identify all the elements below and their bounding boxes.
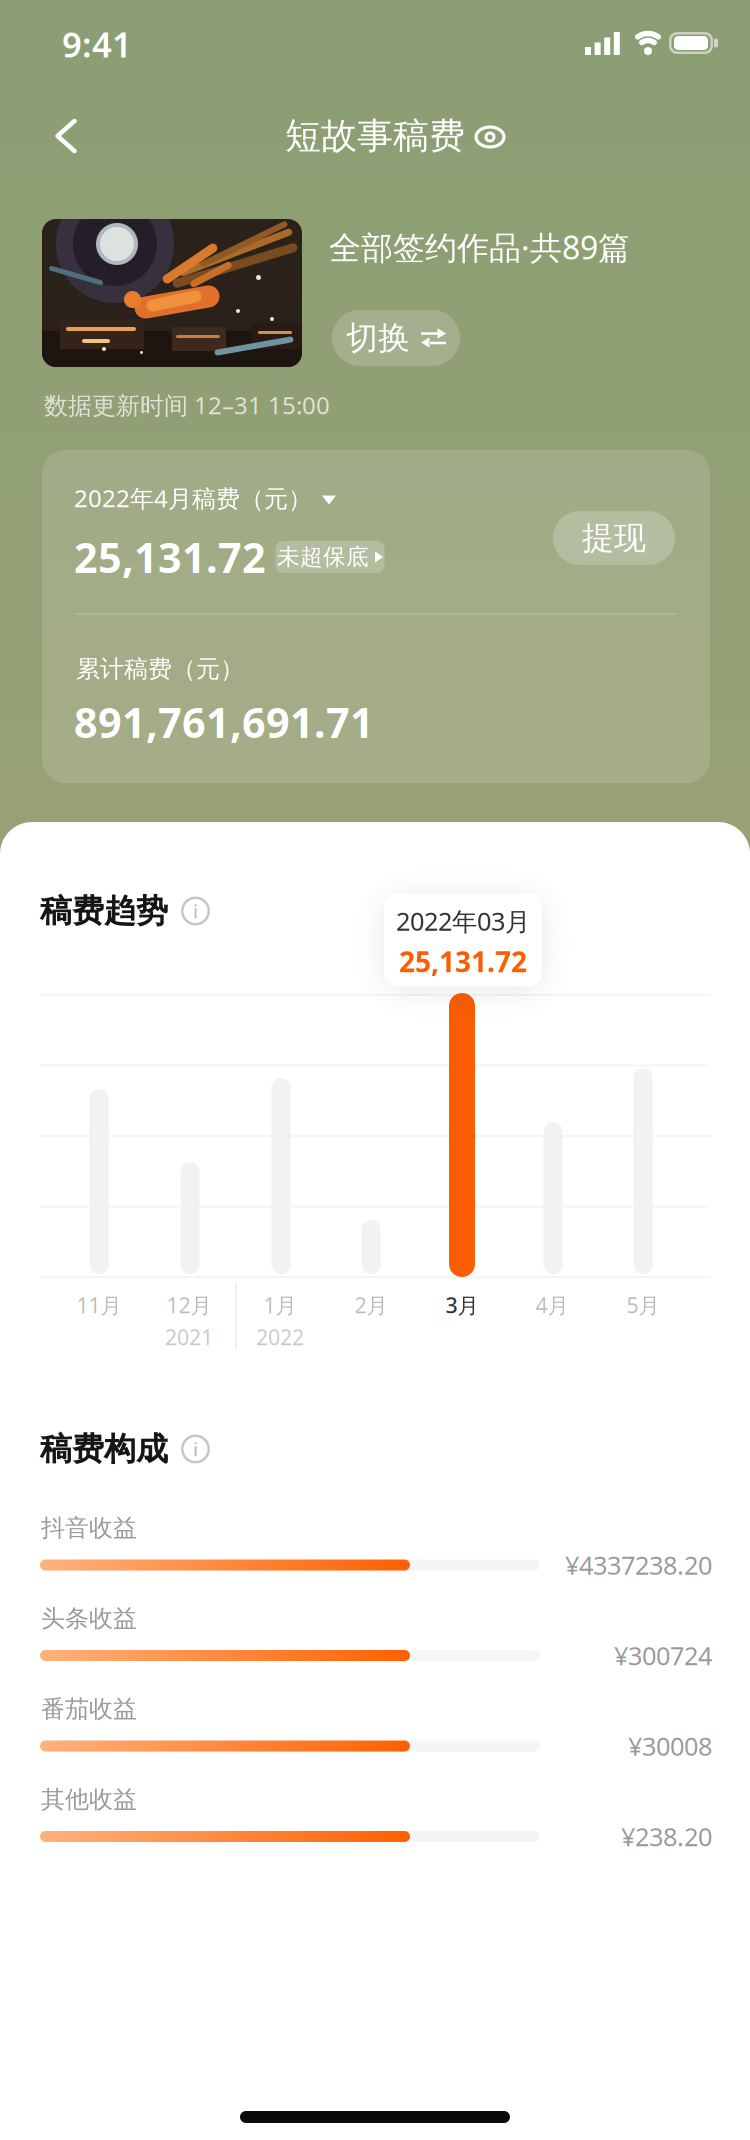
staticText: 稿费趋势	[40, 891, 168, 931]
staticText: 抖音收益	[41, 1513, 137, 1543]
button[interactable]: 未超保底	[275, 541, 384, 573]
button[interactable]: 切换	[332, 310, 460, 366]
staticText: 未超保底	[277, 543, 369, 571]
staticText: i	[193, 899, 198, 923]
staticText: ¥4337238.20	[565, 1548, 712, 1582]
staticText: 5月	[626, 1291, 659, 1319]
staticText: 番茄收益	[41, 1694, 137, 1724]
staticText: 2月	[354, 1291, 387, 1319]
staticText: 2022年03月	[396, 904, 530, 938]
button[interactable]	[473, 122, 507, 152]
staticText: 切换	[346, 318, 410, 358]
staticText: 全部签约作品·共89篇	[329, 226, 630, 268]
button[interactable]	[42, 219, 302, 367]
staticText: 其他收益	[41, 1785, 137, 1814]
staticText: 25,131.72	[74, 530, 266, 584]
staticText: 2022年4月稿费（元）	[74, 482, 312, 514]
staticText: 11月	[76, 1291, 121, 1319]
staticText: 9:41	[62, 21, 132, 67]
staticText: 数据更新时间 12–31 15:00	[44, 389, 330, 421]
staticText: 稿费构成	[40, 1429, 168, 1469]
staticText: ¥238.20	[621, 1820, 712, 1853]
staticText: 1月	[263, 1291, 296, 1319]
staticText: 提现	[582, 518, 646, 558]
staticText: 头条收益	[41, 1604, 137, 1633]
staticText: 2021	[165, 1323, 213, 1351]
staticText: 3月	[445, 1291, 478, 1319]
button[interactable]: 提现	[553, 511, 675, 565]
button[interactable]: 2022年4月稿费（元）	[74, 482, 336, 514]
staticText: ¥300724	[614, 1639, 712, 1672]
staticText: 891,761,691.71	[74, 695, 374, 749]
staticText: 12月	[166, 1291, 211, 1319]
staticText: i	[193, 1437, 198, 1461]
staticText: 2022	[256, 1323, 304, 1351]
staticText: 25,131.72	[399, 943, 527, 980]
staticText: 短故事稿费	[285, 114, 465, 158]
button[interactable]	[45, 109, 86, 163]
staticText: ¥30008	[628, 1729, 712, 1763]
staticText: 4月	[535, 1291, 568, 1319]
staticText: 累计稿费（元）	[76, 654, 244, 684]
